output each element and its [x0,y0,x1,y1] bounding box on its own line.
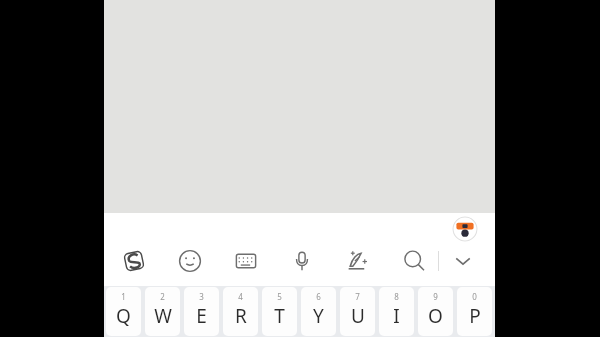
staticText: 6 [316,291,321,302]
staticText: 0 [472,291,477,302]
staticText: 2 [160,291,165,302]
staticText: O [428,303,443,329]
button[interactable]: Sogou input method [116,243,152,279]
staticText: E [196,303,207,329]
button[interactable]: 3 [184,287,219,336]
button[interactable]: 2 [145,287,180,336]
button[interactable]: 0 [457,287,492,336]
staticText: 1 [121,291,126,302]
button[interactable]: Search [396,243,432,279]
button[interactable]: Handwriting [340,243,376,279]
button[interactable]: 4 [223,287,258,336]
button[interactable]: Keyboard layout [228,243,264,279]
staticText: T [274,303,285,329]
staticText: Y [313,303,324,329]
button[interactable]: 7 [340,287,375,336]
staticText: Q [116,303,131,329]
button[interactable]: Voice input [284,243,320,279]
button[interactable]: 6 [301,287,336,336]
staticText: 3 [199,291,204,302]
staticText: 5 [277,291,282,302]
button[interactable]: Assistant badge [452,216,478,242]
staticText: I [393,303,400,329]
staticText: 8 [394,291,399,302]
button[interactable]: 8 [379,287,414,336]
staticText: 4 [238,291,243,302]
button[interactable]: 9 [418,287,453,336]
staticText: W [154,303,172,329]
staticText: U [351,303,365,329]
staticText: R [235,303,247,329]
button[interactable]: Emoji [172,243,208,279]
button[interactable]: Collapse keyboard [445,243,481,279]
staticText: 9 [433,291,438,302]
button[interactable]: 5 [262,287,297,336]
staticText: 7 [355,291,360,302]
staticText: P [469,303,481,329]
button[interactable]: 1 [106,287,141,336]
